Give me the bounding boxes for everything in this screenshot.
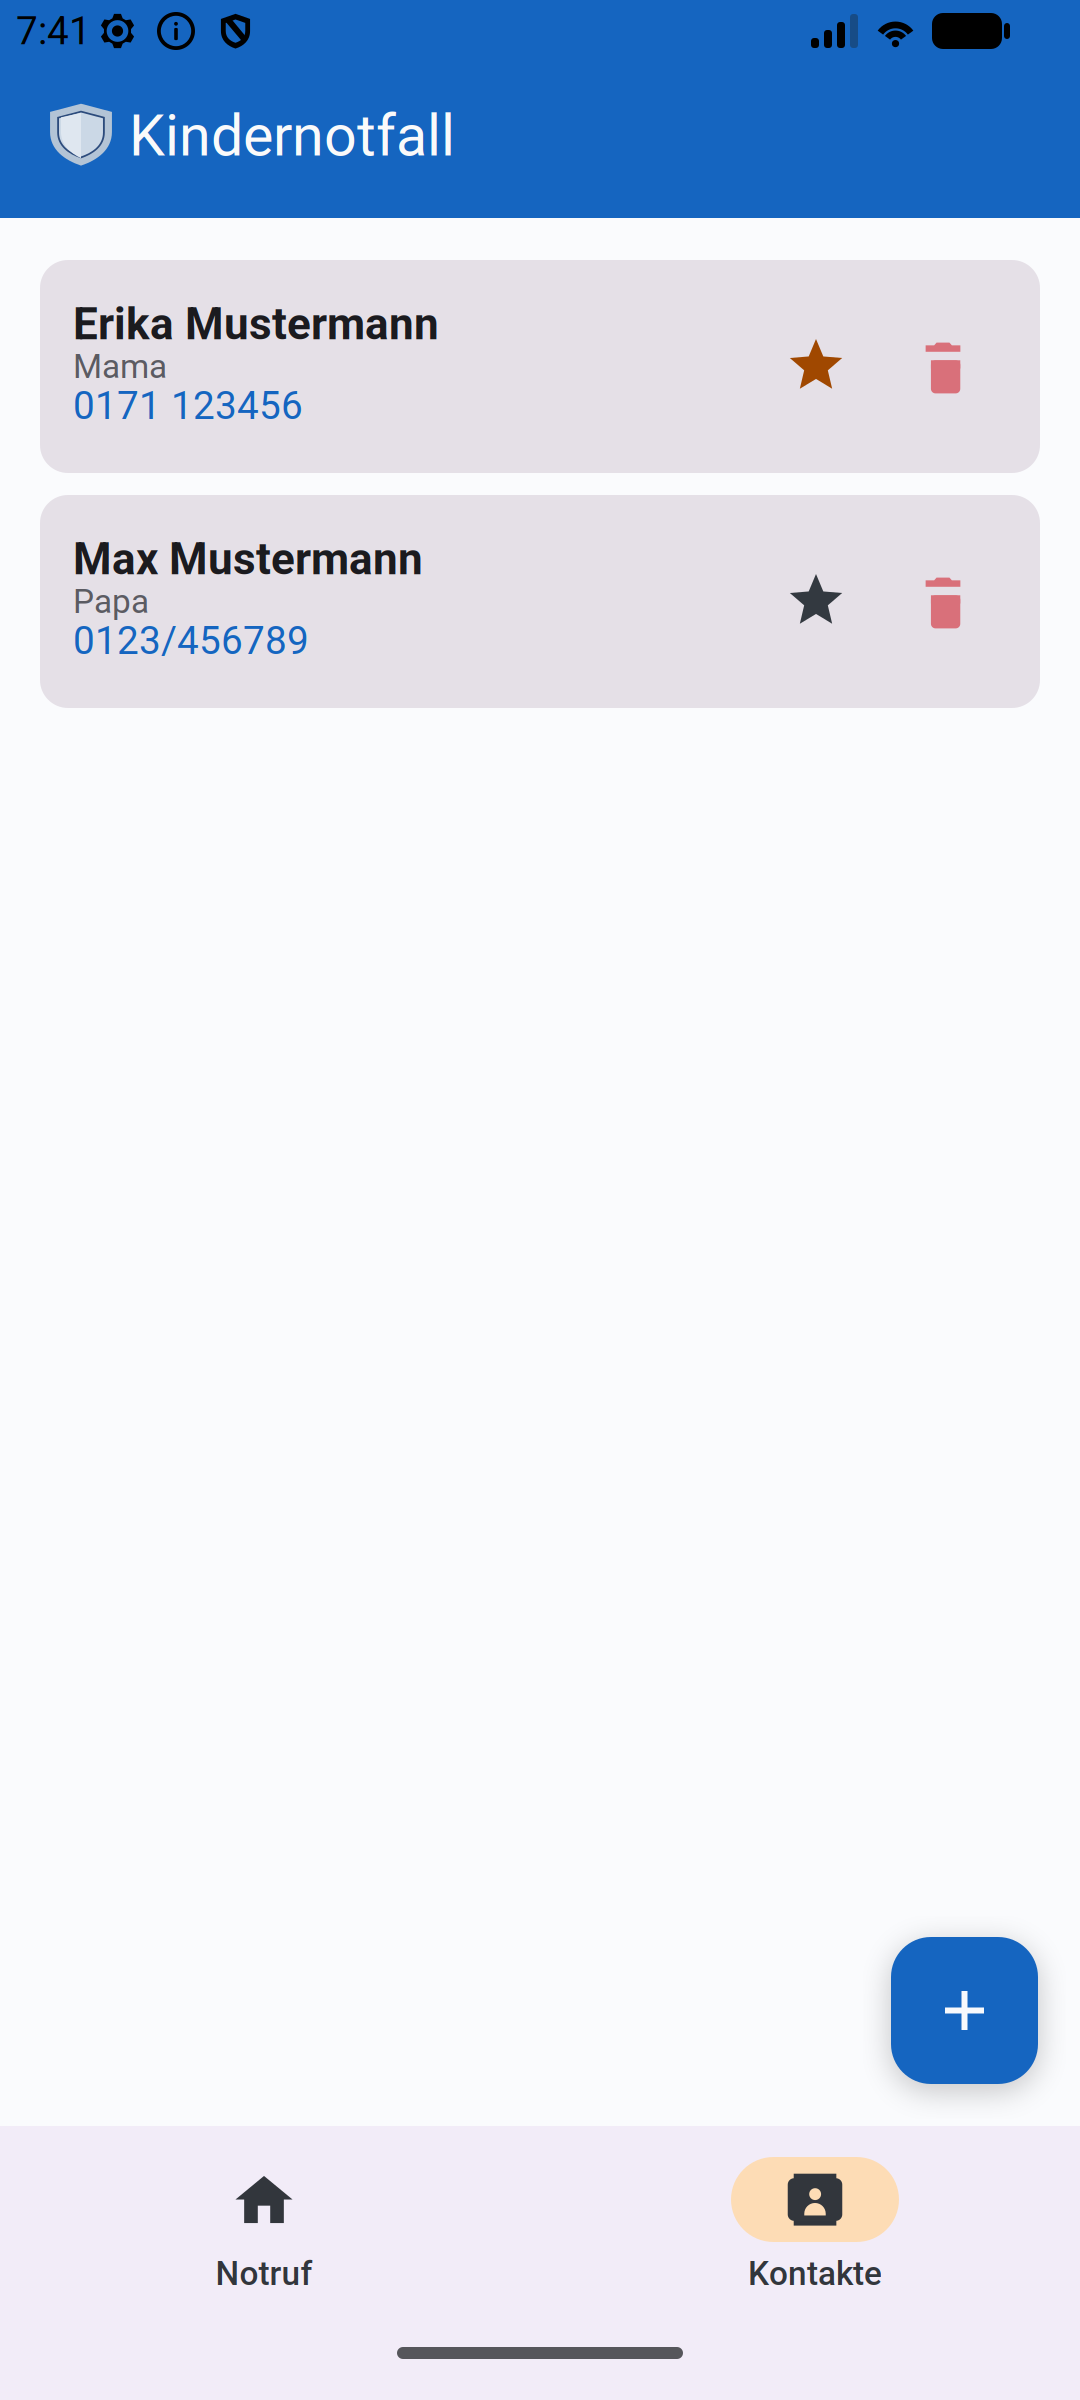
button[interactable]: Kontakt hinzufügen — [891, 1937, 1038, 2084]
button[interactable]: Als Favorit markieren: Max Mustermann — [761, 546, 871, 656]
staticText: 7:41 — [16, 8, 91, 54]
button[interactable]: Notruf — [0, 2126, 540, 2306]
staticText: Notruf — [215, 2254, 312, 2293]
staticText: Erika Mustermann — [73, 298, 439, 350]
button[interactable]: Favorit entfernen: Erika Mustermann — [761, 311, 871, 421]
staticText: Max Mustermann — [73, 533, 423, 585]
staticText: Kindernotfall — [129, 102, 455, 170]
staticText: Mama — [73, 347, 167, 386]
button[interactable]: Kontakte — [540, 2126, 1080, 2306]
staticText: Papa — [73, 582, 149, 621]
button[interactable]: Kontakt löschen: Erika Mustermann — [888, 311, 998, 421]
button[interactable]: Kontakt löschen: Max Mustermann — [888, 546, 998, 656]
staticText: 0123/456789 — [73, 618, 309, 663]
staticText: Kontakte — [748, 2254, 882, 2293]
staticText: 0171 123456 — [73, 383, 303, 428]
